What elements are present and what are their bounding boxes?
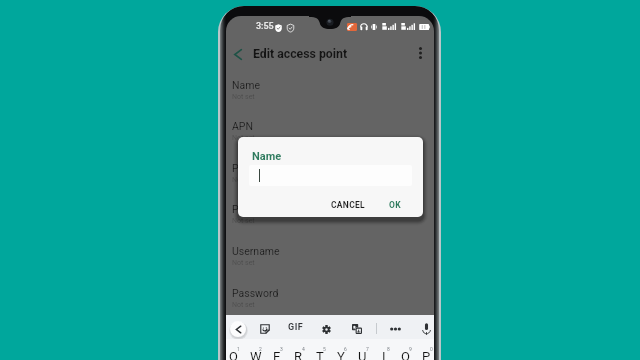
button[interactable]: 4: [288, 339, 309, 360]
button[interactable]: APN: [226, 120, 434, 150]
staticText: R: [294, 349, 303, 360]
staticText: 7: [366, 346, 369, 352]
staticText: Y: [337, 349, 345, 360]
staticText: W: [250, 349, 262, 360]
staticText: 6: [344, 346, 347, 352]
button[interactable]: Password: [226, 287, 434, 317]
staticText: U: [358, 349, 367, 360]
button[interactable]: 6: [330, 339, 351, 360]
staticText: Password: [232, 287, 279, 299]
button[interactable]: 8: [373, 339, 394, 360]
button[interactable]: 1: [226, 339, 244, 360]
staticText: Not set: [232, 93, 255, 101]
staticText: Not set: [232, 301, 255, 309]
staticText: Port: [232, 203, 252, 215]
staticText: Edit access point: [253, 47, 348, 61]
staticText: Username: [232, 245, 280, 257]
button[interactable]: Proxy: [226, 162, 434, 192]
staticText: 4: [302, 346, 305, 352]
staticText: T: [316, 349, 324, 360]
staticText: 9: [409, 346, 412, 352]
button[interactable]: Translate: [348, 320, 366, 338]
staticText: 0: [430, 346, 433, 352]
staticText: Not set: [232, 259, 255, 267]
button[interactable]: Name: [226, 79, 434, 109]
staticText: OK: [389, 200, 401, 210]
button[interactable]: 5: [309, 339, 330, 360]
staticText: 5: [323, 346, 326, 352]
staticText: 8: [387, 346, 390, 352]
staticText: Q: [229, 349, 238, 360]
staticText: E: [273, 349, 281, 360]
button[interactable]: [249, 165, 412, 186]
staticText: GIF: [288, 322, 304, 333]
button[interactable]: Settings: [317, 320, 335, 338]
staticText: Not set: [232, 176, 255, 184]
button[interactable]: 0: [416, 339, 434, 360]
button[interactable]: CANCEL: [329, 197, 368, 213]
staticText: APN: [232, 120, 253, 132]
staticText: O: [401, 349, 410, 360]
button[interactable]: More: [386, 320, 404, 338]
button[interactable]: 9: [395, 339, 416, 360]
staticText: 1: [237, 346, 240, 352]
button[interactable]: Stickers: [256, 320, 274, 338]
staticText: Name: [232, 79, 260, 91]
staticText: 2: [259, 346, 262, 352]
button[interactable]: 7: [352, 339, 373, 360]
staticText: Proxy: [232, 162, 259, 174]
staticText: Not set: [232, 134, 255, 142]
button[interactable]: OK: [387, 197, 403, 213]
button[interactable]: Voice input: [417, 320, 434, 338]
staticText: I: [382, 349, 386, 360]
staticText: Not set: [232, 217, 255, 225]
button[interactable]: Back: [228, 44, 248, 64]
staticText: Name: [252, 150, 282, 163]
button[interactable]: Back: [230, 321, 246, 337]
staticText: P: [422, 349, 431, 360]
button[interactable]: GIF: [288, 322, 304, 333]
button[interactable]: 2: [245, 339, 266, 360]
staticText: 3: [280, 346, 283, 352]
button[interactable]: More options: [410, 43, 430, 63]
staticText: 3:55: [256, 21, 274, 32]
button[interactable]: Username: [226, 245, 434, 275]
button[interactable]: 3: [266, 339, 287, 360]
button[interactable]: Port: [226, 203, 434, 233]
staticText: CANCEL: [331, 200, 366, 210]
